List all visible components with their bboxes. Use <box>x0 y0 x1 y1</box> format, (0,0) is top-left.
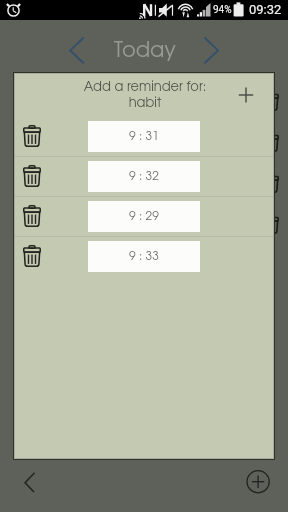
staticText: 94% <box>213 4 232 16</box>
button[interactable]: Previous day <box>58 32 94 68</box>
button[interactable]: 9 : 31 <box>88 121 200 152</box>
staticText: 9 : 32 <box>129 171 159 182</box>
button[interactable]: Delete reminder <box>13 236 275 276</box>
button[interactable]: Add a reminder for: habit <box>70 81 220 110</box>
button[interactable]: Delete reminder <box>13 196 275 236</box>
button[interactable]: Delete reminder <box>13 116 275 156</box>
button[interactable]: Delete reminder <box>15 156 88 196</box>
button[interactable]: Delete reminder <box>15 116 88 156</box>
button[interactable]: Back <box>12 464 48 500</box>
button[interactable]: Next day <box>193 32 229 68</box>
button[interactable]: Today <box>114 41 176 61</box>
button[interactable]: Delete reminder <box>15 236 88 276</box>
button[interactable]: Delete reminder <box>13 156 275 196</box>
staticText: 09:32 <box>249 2 282 17</box>
staticText: 9 : 33 <box>129 251 159 262</box>
button[interactable]: 9 : 33 <box>88 241 200 272</box>
button[interactable]: 9 : 32 <box>88 161 200 192</box>
button[interactable]: Add <box>240 464 276 500</box>
staticText: 9 : 29 <box>129 211 159 222</box>
button[interactable]: 9 : 29 <box>88 201 200 232</box>
staticText: 9 : 31 <box>129 131 159 142</box>
button[interactable]: Add reminder <box>228 77 264 113</box>
button[interactable]: Delete reminder <box>15 196 88 236</box>
